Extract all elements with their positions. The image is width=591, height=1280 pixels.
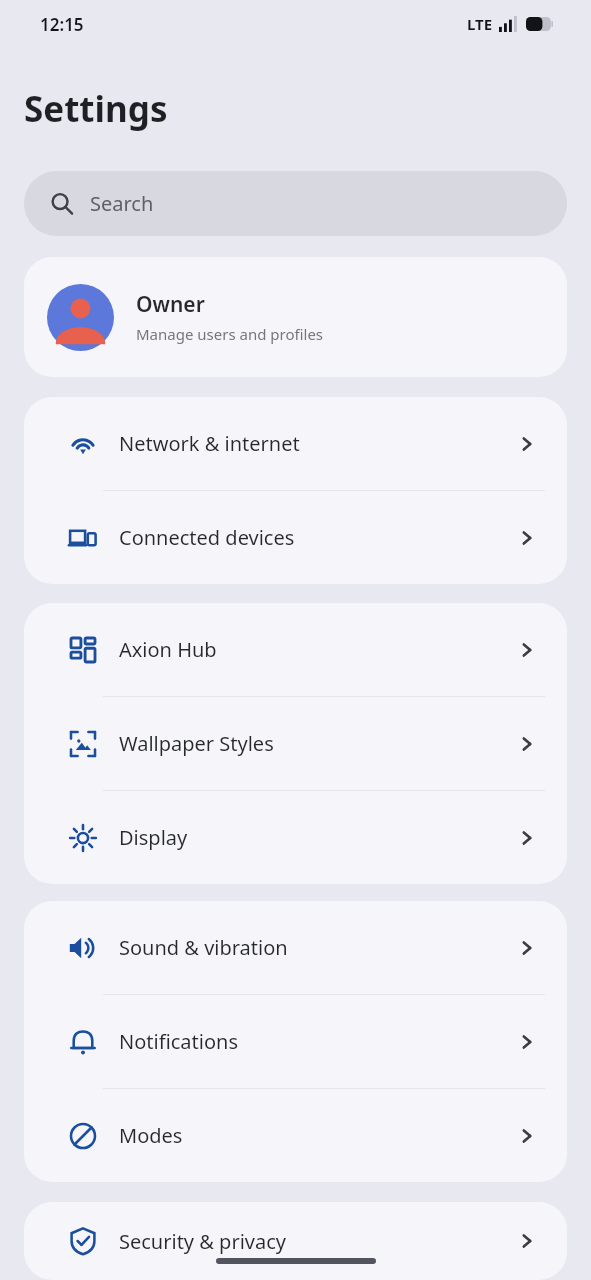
staticText: Manage users and profiles	[136, 324, 324, 344]
staticText: Sound & vibration	[119, 934, 517, 961]
button[interactable]: Network & internet	[24, 397, 567, 490]
button[interactable]: Connected devices	[24, 491, 567, 584]
staticText: LTE	[467, 14, 493, 34]
button[interactable]: Security & privacy	[24, 1202, 567, 1280]
button[interactable]: Notifications	[24, 995, 567, 1088]
staticText: Network & internet	[119, 430, 517, 457]
button[interactable]: Axion Hub	[24, 603, 567, 696]
staticText: Display	[119, 824, 517, 851]
staticText: Settings	[24, 85, 168, 133]
staticText: Owner	[136, 290, 205, 319]
button[interactable]: Search	[24, 171, 567, 236]
button[interactable]: Wallpaper Styles	[24, 697, 567, 790]
staticText: Modes	[119, 1122, 517, 1149]
staticText: Notifications	[119, 1028, 517, 1055]
staticText: Connected devices	[119, 524, 517, 551]
staticText: 12:15	[40, 13, 84, 36]
staticText: Axion Hub	[119, 636, 517, 663]
button[interactable]: Sound & vibration	[24, 901, 567, 994]
staticText: Security & privacy	[119, 1228, 517, 1255]
staticText: Search	[90, 190, 154, 217]
staticText: Wallpaper Styles	[119, 730, 517, 757]
button[interactable]: Display	[24, 791, 567, 884]
button[interactable]: Modes	[24, 1089, 567, 1182]
button[interactable]: Owner	[24, 257, 567, 377]
